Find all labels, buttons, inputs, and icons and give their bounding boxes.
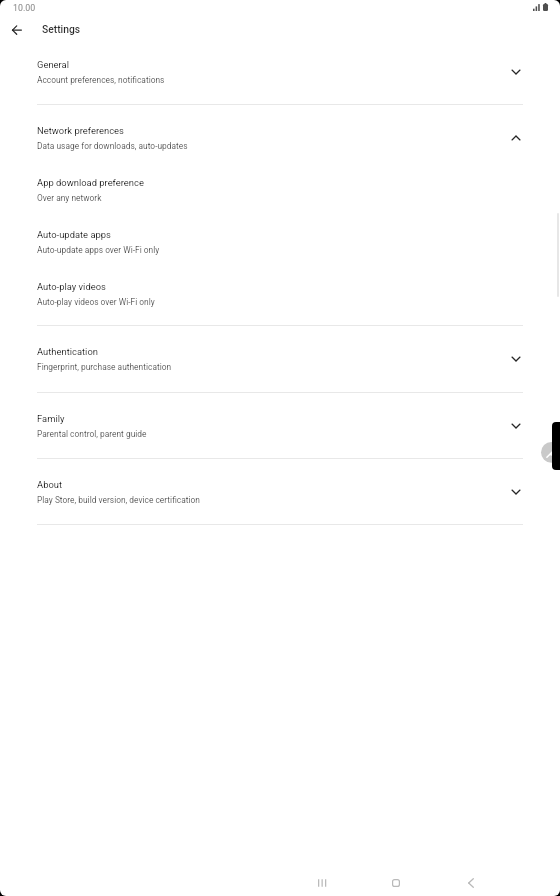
button[interactable]: Navigate up [2,16,31,43]
staticText: Fingerprint, purchase authentication [37,362,172,372]
staticText: Over any network [37,193,102,203]
button[interactable]: Recent apps [285,866,359,896]
staticText: App download preference [37,177,144,188]
button[interactable]: About [0,459,560,524]
staticText: Parental control, parent guide [37,429,147,439]
button[interactable]: Authentication [0,326,560,392]
staticText: Authentication [37,346,98,357]
staticText: Family [37,413,65,424]
staticText: 10.00 [13,3,36,13]
staticText: Play Store, build version, device certif… [37,495,200,505]
staticText: Network preferences [37,125,124,136]
staticText: Data usage for downloads, auto-updates [37,141,188,151]
staticText: Auto-update apps [37,229,111,240]
staticText: Account preferences, notifications [37,75,165,85]
staticText: About [37,479,63,490]
button[interactable]: Home [359,866,433,896]
staticText: Settings [42,23,81,35]
button[interactable]: App download preference [0,157,560,209]
staticText: Auto-play videos [37,281,106,292]
staticText: General [37,59,69,70]
staticText: Auto-update apps over Wi-Fi only [37,245,160,255]
button[interactable]: Network preferences [0,105,560,157]
button[interactable]: General [0,46,560,104]
button[interactable]: Open edge panel [552,422,560,470]
staticText: Auto-play videos over Wi-Fi only [37,297,155,307]
button[interactable]: Auto-update apps [0,209,560,261]
button[interactable]: Family [0,393,560,458]
button[interactable]: Auto-play videos [0,261,560,313]
button[interactable]: Back [433,866,507,896]
